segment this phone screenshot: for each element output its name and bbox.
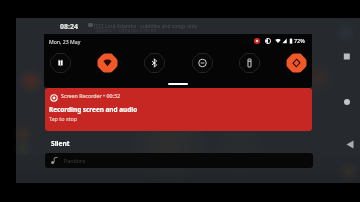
button[interactable]: Do not disturb xyxy=(192,53,213,73)
staticText: [CC] Lord Adamka - subtitles and songs o… xyxy=(94,23,198,30)
button[interactable]: Screen Recorder • 00:32 xyxy=(45,88,312,131)
button[interactable]: Wi-Fi xyxy=(97,53,118,73)
staticText: Pandora xyxy=(64,157,85,164)
staticText: Адамка — субтитры и песни xyxy=(96,27,157,33)
staticText: Silent xyxy=(51,139,70,148)
staticText: Recording screen and audio xyxy=(49,105,138,114)
staticText: Screen Recorder • 00:32 xyxy=(61,92,120,99)
button[interactable]: Pandora xyxy=(45,153,313,168)
button[interactable]: Auto rotate xyxy=(286,53,307,73)
staticText: 72% xyxy=(294,37,305,44)
staticText: 08:24 xyxy=(60,22,78,32)
button[interactable]: Flashlight xyxy=(239,53,260,73)
button[interactable]: Bluetooth xyxy=(144,53,165,73)
staticText: Mon, 23 May xyxy=(49,38,81,45)
staticText: Tap to stop xyxy=(49,115,78,122)
button[interactable]: Mobile data xyxy=(50,53,71,73)
